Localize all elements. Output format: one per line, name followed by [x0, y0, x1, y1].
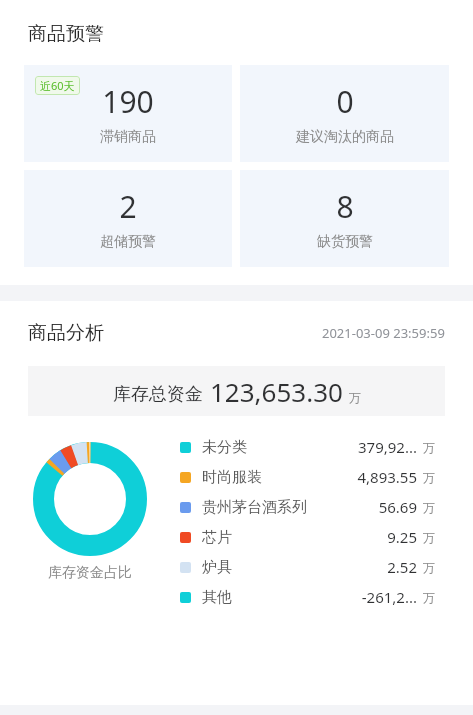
staticText: 近60天 [40, 78, 75, 93]
button[interactable]: 时尚服装 [180, 462, 435, 492]
staticText: 万 [423, 590, 435, 605]
staticText: 56.69 [378, 497, 417, 517]
staticText: 商品预警 [28, 22, 104, 46]
staticText: 建议淘汰的商品 [296, 128, 394, 146]
staticText: 万 [423, 440, 435, 455]
staticText: 时尚服装 [202, 468, 262, 487]
staticText: 190 [102, 81, 154, 122]
staticText: 贵州茅台酒系列 [202, 498, 307, 517]
staticText: 123,653.30 [210, 374, 343, 409]
staticText: 万 [423, 500, 435, 515]
staticText: 万 [423, 470, 435, 485]
other: 库存资金占比环形图 [33, 442, 147, 556]
staticText: 8 [336, 186, 354, 227]
button[interactable]: 0 [240, 65, 449, 162]
staticText: 超储预警 [100, 233, 156, 251]
staticText: 其他 [202, 588, 232, 607]
button[interactable]: 近60天 [24, 65, 232, 162]
staticText: 9.25 [387, 527, 417, 547]
staticText: -261,2... [361, 587, 417, 607]
staticText: 万 [349, 390, 361, 405]
staticText: 4,893.55 [357, 467, 417, 487]
staticText: 炉具 [202, 558, 232, 577]
staticText: 2.52 [387, 557, 417, 577]
button[interactable]: 8 [240, 170, 449, 267]
staticText: 滞销商品 [100, 128, 156, 146]
staticText: 2 [119, 186, 137, 227]
button[interactable]: 芯片 [180, 522, 435, 552]
staticText: 未分类 [202, 438, 247, 457]
staticText: 芯片 [202, 528, 232, 547]
staticText: 万 [423, 560, 435, 575]
staticText: 库存资金占比 [48, 564, 132, 582]
staticText: 379,92... [358, 437, 417, 457]
button[interactable]: 其他 [180, 582, 435, 612]
button[interactable]: 未分类 [180, 432, 435, 462]
staticText: 0 [336, 81, 354, 122]
button[interactable]: 贵州茅台酒系列 [180, 492, 435, 522]
staticText: 万 [423, 530, 435, 545]
staticText: 库存总资金 [113, 383, 203, 406]
staticText: 商品分析 [28, 321, 104, 345]
staticText: 缺货预警 [317, 233, 373, 251]
button[interactable]: 库存总资金 [28, 366, 445, 416]
button[interactable]: 2 [24, 170, 232, 267]
button[interactable]: 炉具 [180, 552, 435, 582]
staticText: 2021-03-09 23:59:59 [322, 324, 445, 342]
